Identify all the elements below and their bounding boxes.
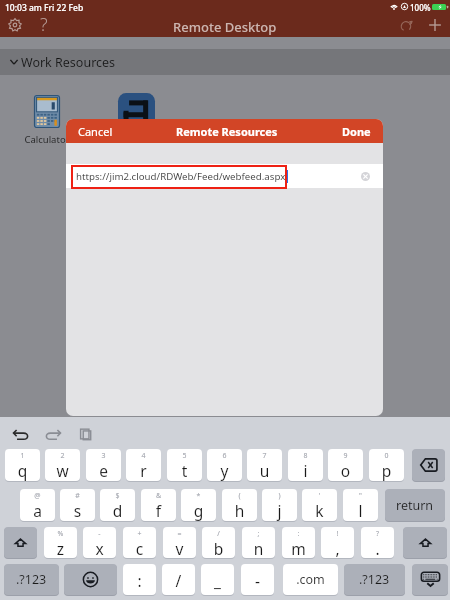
staticText: Fri 22 Feb: [44, 2, 84, 14]
button[interactable]: Cancel: [78, 124, 113, 139]
button[interactable]: Redo: [42, 423, 64, 445]
button[interactable]: .?123: [4, 564, 59, 595]
button[interactable]: 1: [5, 449, 40, 481]
button[interactable]: Emoji: [64, 564, 117, 595]
staticText: z: [44, 538, 77, 558]
button[interactable]: 7: [247, 449, 282, 481]
staticText: 7: [247, 451, 282, 461]
button[interactable]: &: [141, 489, 176, 521]
staticText: Remote Desktop: [173, 18, 277, 36]
staticText: .com: [283, 571, 338, 588]
staticText: k: [302, 500, 337, 521]
staticText: m: [282, 538, 315, 558]
staticText: ": [343, 491, 378, 501]
button[interactable]: Undo: [10, 423, 32, 445]
button[interactable]: 5: [167, 449, 202, 481]
staticText: c: [123, 538, 156, 558]
button[interactable]: 4: [126, 449, 161, 481]
staticText: -: [83, 529, 116, 539]
button[interactable]: -: [241, 564, 274, 595]
staticText: t: [167, 460, 202, 481]
staticText: 6: [207, 451, 242, 461]
button[interactable]: :: [123, 564, 156, 595]
button[interactable]: Work Resources: [0, 49, 450, 75]
button[interactable]: Help: [31, 13, 57, 37]
staticText: Cancel: [78, 124, 113, 139]
staticText: h: [222, 500, 257, 521]
staticText: +: [123, 529, 156, 539]
button[interactable]: *: [181, 489, 216, 521]
button[interactable]: ;: [242, 527, 275, 558]
button[interactable]: ): [262, 489, 297, 521]
button[interactable]: Settings: [2, 13, 28, 37]
button[interactable]: !: [321, 527, 354, 558]
staticText: /: [162, 570, 195, 591]
button[interactable]: 3: [86, 449, 121, 481]
button[interactable]: /: [202, 527, 235, 558]
staticText: /: [202, 529, 235, 539]
staticText: .: [361, 538, 394, 558]
button[interactable]: 0: [369, 449, 404, 481]
staticText: Done: [342, 124, 371, 139]
button[interactable]: (: [222, 489, 257, 521]
staticText: d: [100, 500, 135, 521]
staticText: y: [207, 460, 242, 481]
button[interactable]: Clear text: [361, 172, 370, 181]
staticText: s: [60, 500, 95, 521]
button[interactable]: 6: [207, 449, 242, 481]
staticText: https://jim2.cloud/RDWeb/Feed/webfeed.as…: [76, 170, 286, 183]
button[interactable]: return: [385, 489, 445, 521]
button[interactable]: _: [201, 564, 234, 595]
staticText: :: [123, 570, 156, 591]
button[interactable]: 8: [288, 449, 323, 481]
button[interactable]: [103, 93, 169, 149]
staticText: Work Resources: [21, 54, 116, 71]
button[interactable]: $: [100, 489, 135, 521]
staticText: j: [262, 500, 297, 521]
button[interactable]: Refresh: [393, 13, 419, 37]
staticText: f: [141, 500, 176, 521]
staticText: l: [343, 500, 378, 521]
staticText: ;: [242, 529, 275, 539]
button[interactable]: ?: [361, 527, 394, 558]
button[interactable]: Paste: [74, 423, 96, 445]
button[interactable]: /: [162, 564, 195, 595]
staticText: (: [222, 491, 257, 501]
staticText: 4: [126, 451, 161, 461]
staticText: 5: [167, 451, 202, 461]
button[interactable]: .?123: [344, 564, 405, 595]
staticText: p: [369, 460, 404, 481]
staticText: 100%: [410, 2, 431, 13]
staticText: a: [20, 500, 55, 521]
button[interactable]: Done: [342, 124, 371, 139]
staticText: *: [181, 491, 216, 501]
button[interactable]: Backspace: [412, 449, 445, 481]
button[interactable]: %: [44, 527, 77, 558]
button[interactable]: @: [20, 489, 55, 521]
button[interactable]: Shift: [4, 527, 37, 558]
button[interactable]: Calculator: [14, 95, 80, 151]
staticText: !: [321, 529, 354, 539]
button[interactable]: =: [163, 527, 196, 558]
button[interactable]: Shift: [403, 527, 447, 558]
staticText: .?123: [359, 571, 390, 588]
button[interactable]: ": [343, 489, 378, 521]
button[interactable]: #: [60, 489, 95, 521]
button[interactable]: +: [123, 527, 156, 558]
staticText: =: [163, 529, 196, 539]
staticText: q: [5, 460, 40, 481]
button[interactable]: .com: [283, 564, 338, 595]
staticText: 1: [5, 451, 40, 461]
staticText: ,: [321, 538, 354, 558]
button[interactable]: Add: [422, 13, 448, 37]
staticText: &: [141, 491, 176, 501]
button[interactable]: ': [302, 489, 337, 521]
button[interactable]: Hide keyboard: [412, 564, 448, 595]
button[interactable]: -: [83, 527, 116, 558]
staticText: :: [282, 529, 315, 539]
button[interactable]: 9: [328, 449, 363, 481]
button[interactable]: 2: [45, 449, 80, 481]
staticText: ): [262, 491, 297, 501]
staticText: 9: [328, 451, 363, 461]
button[interactable]: :: [282, 527, 315, 558]
